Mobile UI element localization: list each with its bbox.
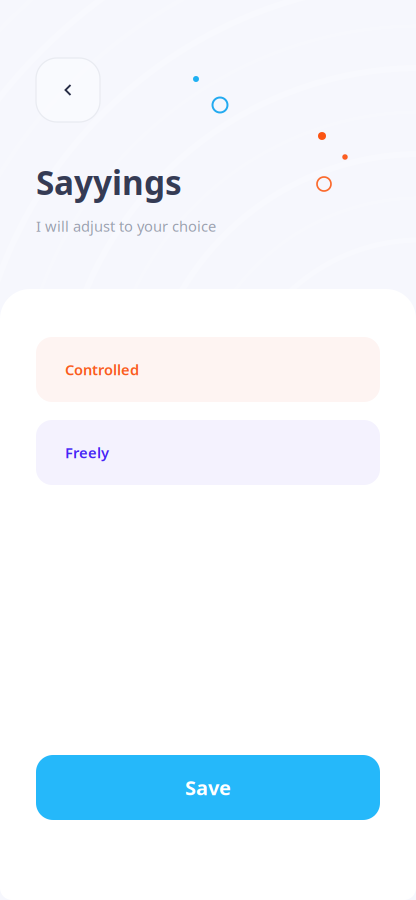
- button[interactable]: Save: [36, 755, 380, 820]
- button[interactable]: Back: [36, 58, 100, 122]
- staticText: Save: [185, 774, 231, 801]
- button[interactable]: Controlled: [36, 337, 380, 402]
- staticText: I will adjust to your choice: [36, 216, 216, 236]
- staticText: Freely: [65, 443, 109, 462]
- staticText: Controlled: [65, 360, 139, 379]
- staticText: Sayyings: [36, 160, 182, 204]
- button[interactable]: Freely: [36, 420, 380, 485]
